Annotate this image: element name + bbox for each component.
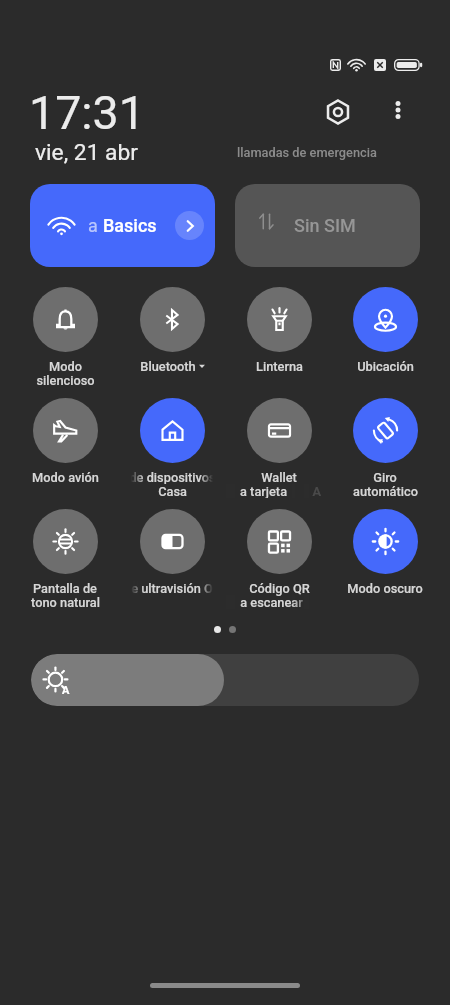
- staticText: Modo: [49, 359, 82, 373]
- staticText: A: [62, 684, 70, 697]
- button[interactable]: Pantalla de: [12, 509, 118, 609]
- button[interactable]: Settings: [321, 95, 354, 128]
- staticText: Wallet: [261, 470, 297, 484]
- staticText: Bluetooth: [140, 359, 196, 373]
- button[interactable]: de dispositivos: [119, 398, 225, 498]
- staticText: Basics: [103, 215, 157, 236]
- staticText: Ubicación: [357, 359, 414, 373]
- staticText: Pantalla de: [33, 581, 97, 595]
- staticText: a: [88, 215, 103, 236]
- button[interactable]: More options: [383, 95, 413, 125]
- staticText: Giro: [373, 470, 397, 484]
- button[interactable]: a: [30, 184, 215, 267]
- button[interactable]: Código QR: [226, 509, 332, 609]
- staticText: Modo avión: [32, 470, 99, 484]
- staticText: Sin SIM: [294, 215, 356, 236]
- staticText: a escanear: [240, 595, 303, 609]
- button[interactable]: Sin SIM: [235, 184, 420, 267]
- button[interactable]: Linterna: [226, 287, 332, 373]
- staticText: e ultravisión O: [131, 581, 213, 595]
- button[interactable]: [150, 983, 300, 988]
- button[interactable]: Brightness: [31, 654, 419, 706]
- staticText: vie, 21 abr: [35, 139, 139, 166]
- button[interactable]: Ubicación: [332, 287, 438, 373]
- button[interactable]: e ultravisión O: [119, 509, 225, 595]
- staticText: Modo oscuro: [347, 581, 423, 595]
- button[interactable]: Bluetooth: [119, 287, 225, 373]
- staticText: automático: [353, 484, 418, 498]
- staticText: a tarjeta A: [240, 484, 321, 498]
- staticText: de dispositivos: [131, 470, 213, 484]
- staticText: Casa: [158, 484, 187, 498]
- staticText: Linterna: [256, 359, 303, 373]
- button[interactable]: Giro: [332, 398, 438, 498]
- staticText: llamadas de emergencia: [237, 145, 377, 160]
- staticText: 17:31: [29, 86, 145, 140]
- staticText: tono natural: [31, 595, 100, 609]
- button[interactable]: Wallet: [226, 398, 332, 498]
- button[interactable]: llamadas de emergencia: [237, 145, 377, 160]
- staticText: silencioso: [36, 373, 95, 387]
- button[interactable]: Modo: [12, 287, 118, 387]
- button[interactable]: Modo oscuro: [332, 509, 438, 595]
- staticText: Código QR: [249, 581, 310, 595]
- button[interactable]: Modo avión: [12, 398, 118, 484]
